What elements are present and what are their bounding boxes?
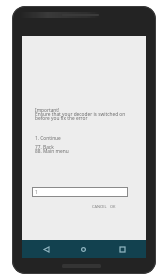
button[interactable]: Recent apps (113, 240, 131, 258)
staticText: 77. Back (35, 144, 54, 151)
button[interactable]: OK (110, 204, 116, 209)
staticText: before you fix the error (35, 115, 88, 122)
staticText: 88. Main menu (35, 148, 69, 155)
button[interactable]: Home (74, 240, 92, 258)
staticText: 1 (35, 189, 38, 195)
button[interactable]: 1 (32, 187, 128, 197)
staticText: Ensure that your decoder is switched on (35, 111, 126, 118)
staticText: Important! (35, 107, 60, 114)
staticText: OK (110, 204, 116, 209)
button[interactable]: CANCEL (92, 204, 107, 209)
staticText: 1. Continue (35, 135, 61, 142)
button[interactable]: Back (37, 240, 55, 258)
staticText: CANCEL (92, 204, 107, 209)
